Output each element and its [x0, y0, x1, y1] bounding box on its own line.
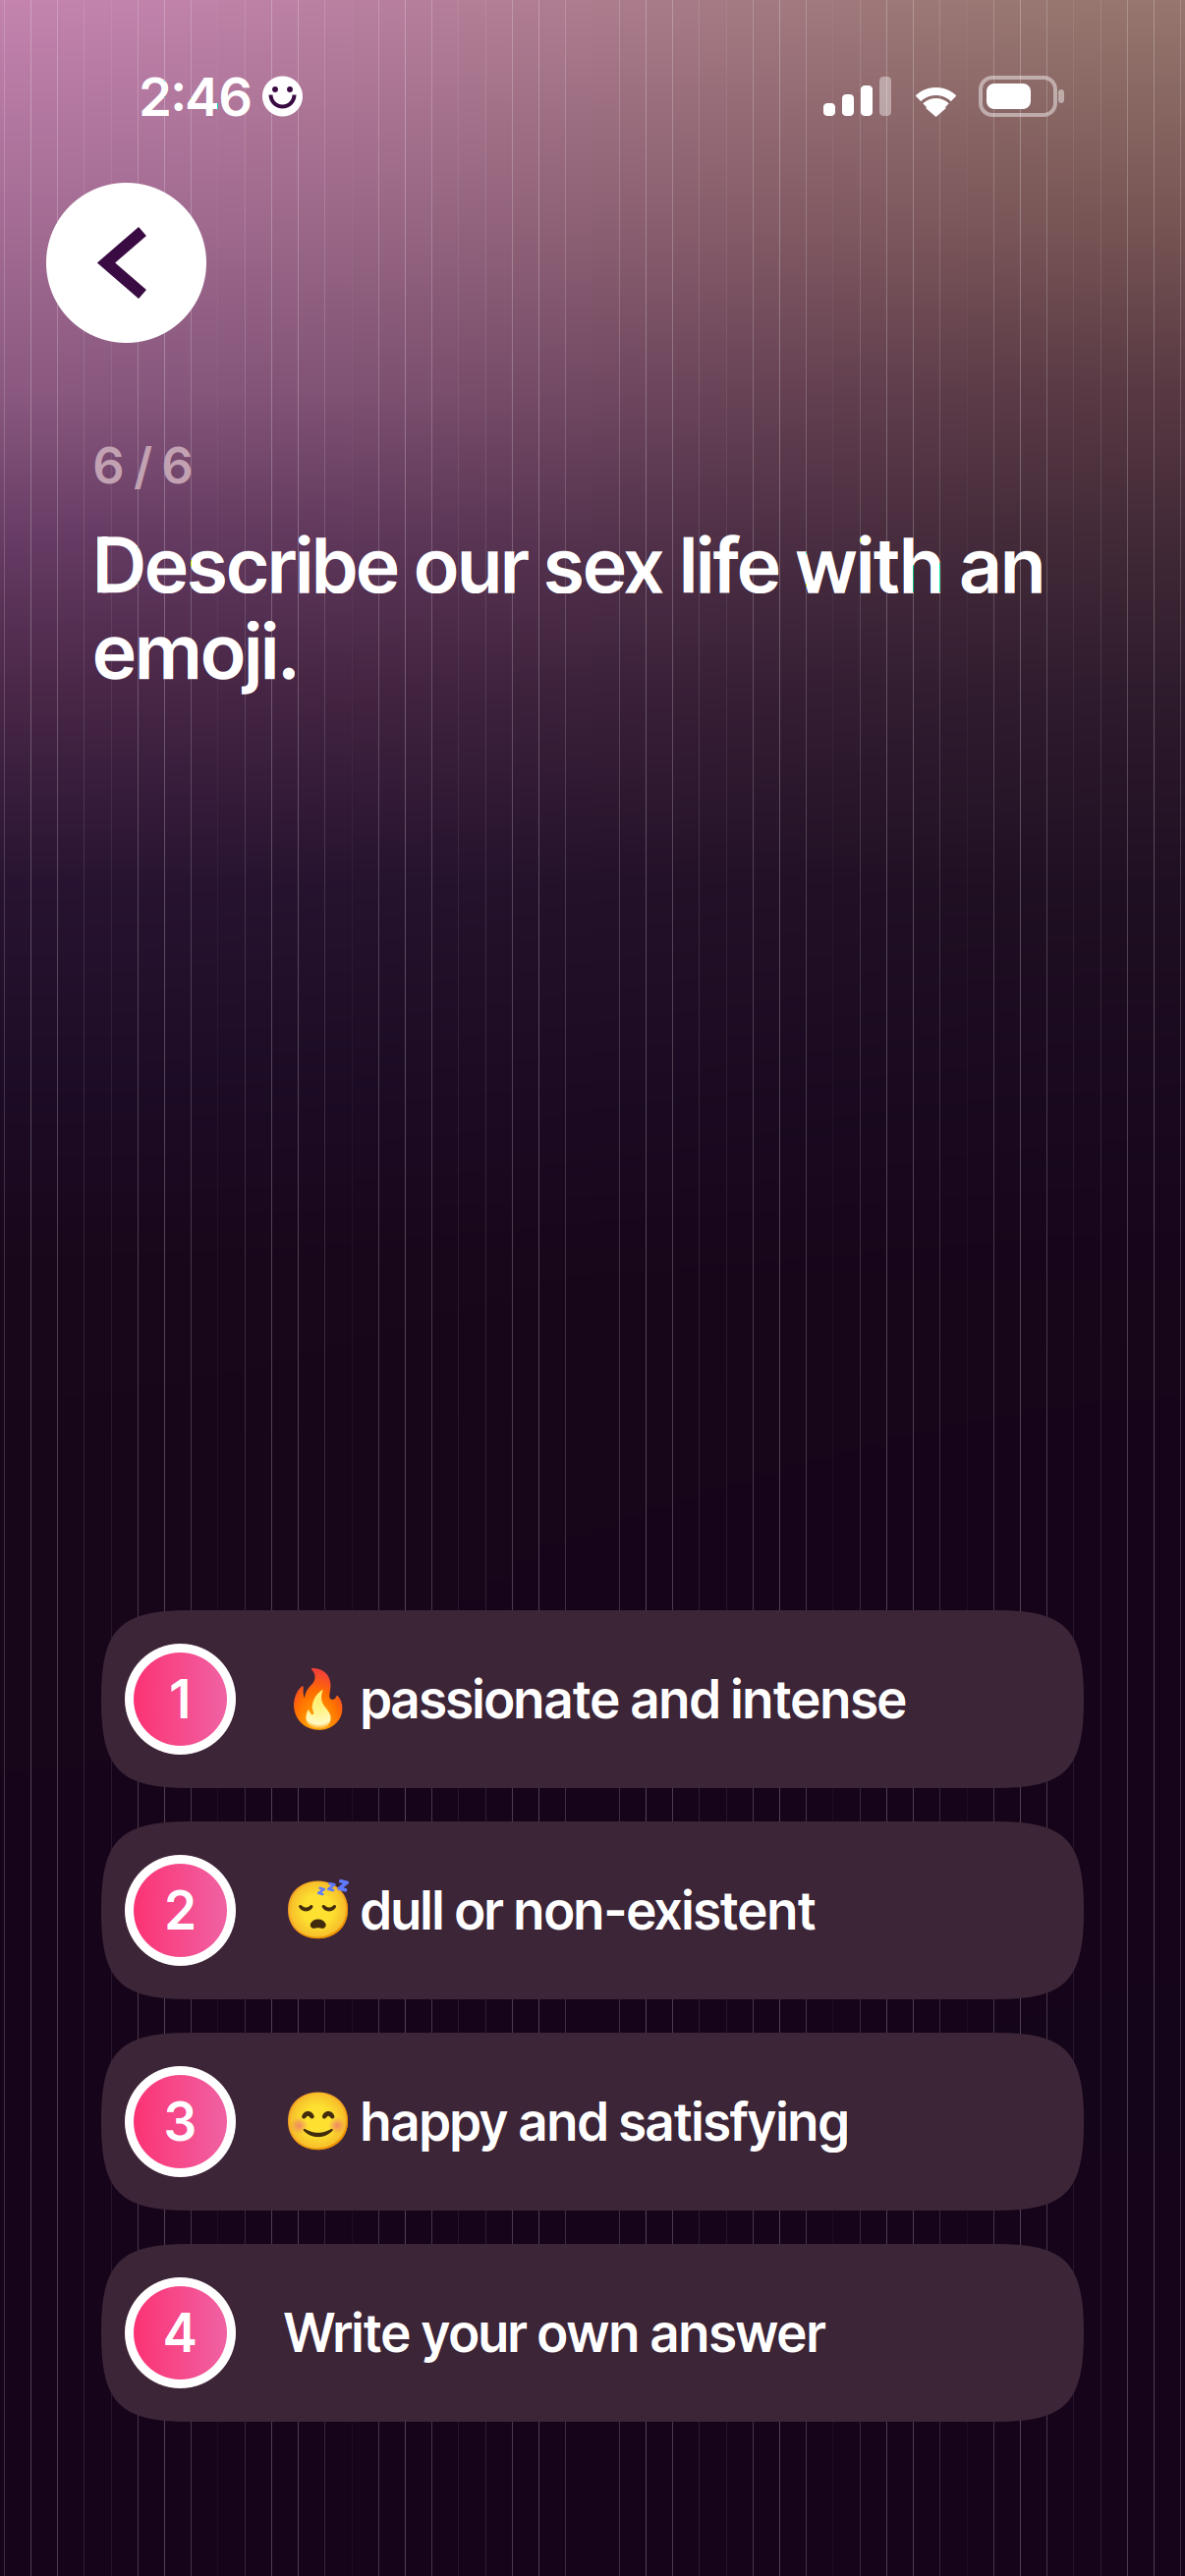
button[interactable]: 4 — [101, 2244, 1084, 2422]
staticText: 3 — [164, 2090, 197, 2153]
staticText: Describe our sex life with an — [93, 519, 1044, 611]
staticText: 😊 — [283, 2089, 353, 2155]
staticText: 🔥 — [283, 1666, 353, 1732]
staticText: 2:46 — [140, 64, 252, 129]
staticText: 4 — [164, 2301, 197, 2364]
staticText: 1 — [170, 1667, 191, 1731]
staticText: passionate and intense — [361, 1667, 907, 1731]
staticText: 😴 — [283, 1877, 353, 1943]
staticText: dull or non-existent — [361, 1879, 816, 1942]
staticText: emoji. — [93, 605, 300, 697]
button[interactable]: 3 — [101, 2033, 1084, 2211]
button[interactable]: Back — [46, 183, 206, 343]
staticText: Write your own answer — [284, 2301, 825, 2364]
button[interactable]: 2 — [101, 1821, 1084, 1999]
staticText: happy and satisfying — [361, 2090, 849, 2153]
button[interactable]: 1 — [101, 1610, 1084, 1788]
staticText: 2 — [165, 1879, 196, 1942]
staticText: 6 / 6 — [93, 435, 193, 495]
